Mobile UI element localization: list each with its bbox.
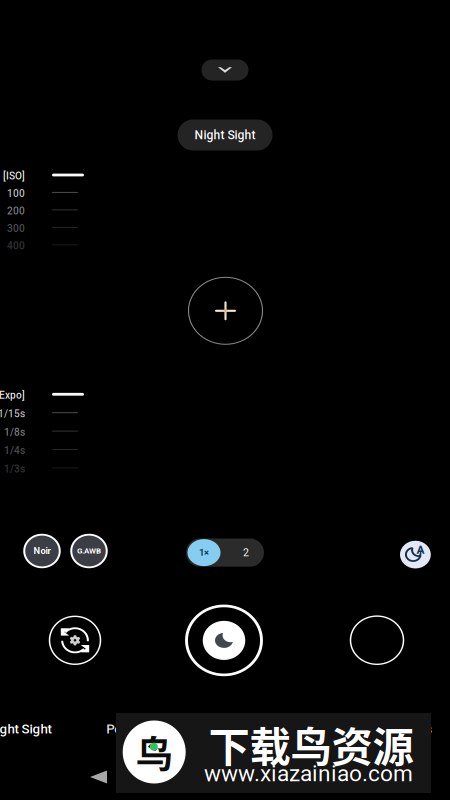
button[interactable]: Camera	[165, 716, 285, 742]
button[interactable]: Video	[256, 716, 376, 742]
staticText: Video	[298, 721, 333, 737]
staticText: 300	[7, 222, 25, 234]
button[interactable]: Night mode auto	[400, 539, 431, 570]
button[interactable]: Noir	[24, 533, 60, 569]
button[interactable]: 2	[233, 538, 259, 567]
staticText: Night Sight	[0, 721, 51, 737]
staticText: 1×	[199, 547, 209, 558]
staticText: [Expo]	[0, 389, 25, 401]
button[interactable]: 1×	[187, 538, 220, 567]
staticText: Night Sight	[194, 128, 255, 142]
staticText: Noir	[33, 545, 50, 556]
staticText: Portrait	[106, 721, 149, 737]
staticText: [ISO]	[3, 170, 25, 182]
staticText: G.AWB	[77, 546, 101, 556]
staticText: 1/4s	[4, 445, 25, 457]
staticText: 1/15s	[0, 408, 25, 420]
button[interactable]: Gallery	[350, 614, 403, 667]
staticText: 1/3s	[4, 463, 25, 475]
staticText: 下载鸟资源	[209, 714, 414, 774]
button[interactable]: G.AWB	[71, 533, 107, 569]
staticText: www.xiazainiao.com	[204, 760, 413, 787]
staticText: 400	[7, 240, 25, 252]
staticText: Settings	[384, 721, 432, 737]
button[interactable]: Portrait	[68, 716, 188, 742]
staticText: 100	[7, 188, 25, 199]
staticText: Camera	[202, 721, 248, 737]
staticText: A	[416, 543, 424, 557]
button[interactable]: Shutter	[186, 603, 261, 678]
staticText: 1/8s	[4, 426, 25, 438]
staticText: 200	[7, 205, 25, 217]
button[interactable]: Back	[90, 770, 107, 783]
button[interactable]: Night Sight	[177, 119, 272, 150]
staticText: 2	[243, 546, 249, 559]
staticText: 鸟	[136, 725, 173, 779]
button[interactable]: Settings	[348, 716, 450, 742]
button[interactable]: Collapse controls	[201, 59, 248, 80]
button[interactable]: Switch camera	[49, 615, 100, 666]
button[interactable]: Night Sight	[0, 716, 79, 742]
